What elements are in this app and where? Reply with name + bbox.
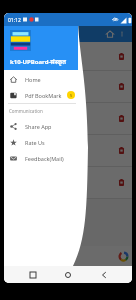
button[interactable]: Chapter 5 (4, 167, 132, 198)
button[interactable]: Rate Us (4, 134, 78, 150)
staticText: Chapter 1 (12, 51, 49, 62)
button[interactable]: Feedback(Mail) (4, 150, 78, 166)
staticText: Share App (25, 123, 52, 130)
button[interactable]: Back (97, 268, 111, 282)
staticText: Pdf BookMark (25, 92, 62, 99)
staticText: Chapter 2 (12, 81, 49, 92)
button[interactable]: Chapter 3 (4, 103, 132, 134)
button[interactable]: Share App (4, 118, 78, 134)
staticText: Chapter 3 (12, 113, 49, 124)
button[interactable]: Chapter 2 (4, 71, 132, 102)
button[interactable]: Chapter 4 (4, 135, 132, 166)
button[interactable]: Home (61, 268, 75, 282)
staticText: 5 (70, 93, 73, 98)
staticText: Communication (9, 108, 43, 114)
button[interactable]: Pdf BookMark (4, 87, 78, 103)
staticText: Rate Us (25, 139, 45, 146)
button[interactable]: Recents (26, 268, 40, 282)
button[interactable]: Chapter 1 (4, 42, 132, 70)
staticText: Home (25, 76, 41, 83)
button[interactable]: More options (118, 30, 126, 38)
button[interactable]: Home (4, 71, 78, 87)
staticText: k10-UPBoard-संस्कृत (10, 58, 67, 66)
staticText: 01:12 (8, 17, 21, 24)
staticText: Feedback(Mail) (25, 155, 64, 162)
button[interactable]: Home (106, 30, 114, 38)
